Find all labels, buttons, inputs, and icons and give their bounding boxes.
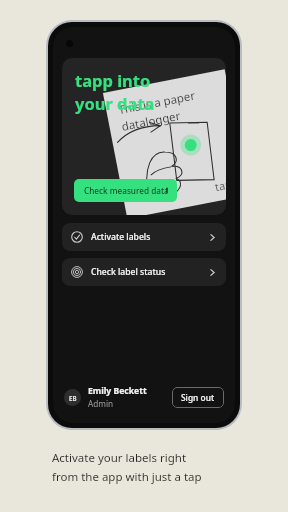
button[interactable]: Activate labels [62,223,226,251]
staticText: your data [75,92,155,114]
button[interactable]: Check label status [62,258,226,286]
staticText: Check label status [91,266,166,278]
button[interactable]: Check measured data [74,179,177,202]
staticText: Sign out [181,392,215,403]
staticText: Admin [88,398,114,409]
staticText: from the app with just a tap [52,469,202,485]
staticText: tapp into [75,69,151,91]
staticText: This is a paper [117,88,197,118]
staticText: EB [69,394,77,402]
staticText: Activate your labels right [52,450,187,466]
staticText: Check measured data [84,185,167,196]
button[interactable]: Sign out [172,387,224,408]
other: Activate labels [71,231,83,243]
other: Check label status [71,266,83,278]
staticText: Emily Beckett [88,385,147,397]
staticText: Activate labels [91,231,151,243]
staticText: tapp [213,175,226,194]
staticText: datalogger [120,108,182,135]
